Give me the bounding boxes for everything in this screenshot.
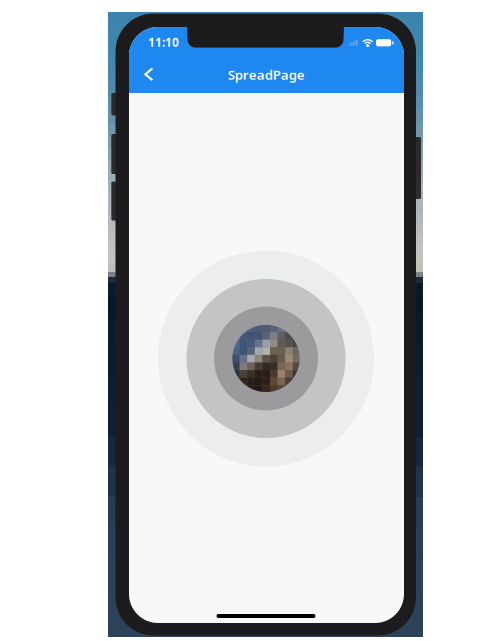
- button[interactable]: Back: [0, 0, 480, 641]
- staticText: 11:10: [148, 34, 179, 50]
- staticText: SpreadPage: [228, 66, 305, 83]
